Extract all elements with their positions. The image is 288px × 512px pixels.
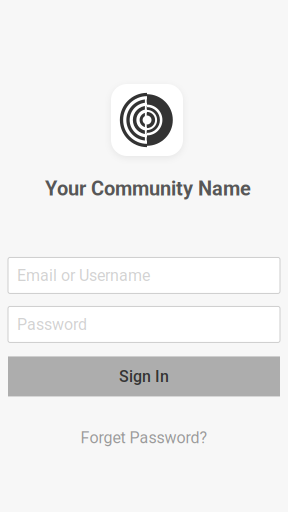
staticText: Sign In [119,367,169,386]
button[interactable]: Password [8,306,280,342]
staticText: Your Community Name [45,177,251,200]
staticText: Forget Password? [80,428,207,447]
button[interactable]: Forget Password? [80,428,207,447]
staticText: Email or Username [17,266,150,285]
button[interactable]: Sign In [8,356,280,396]
button[interactable]: Email or Username [8,257,280,293]
staticText: Password [17,315,87,334]
